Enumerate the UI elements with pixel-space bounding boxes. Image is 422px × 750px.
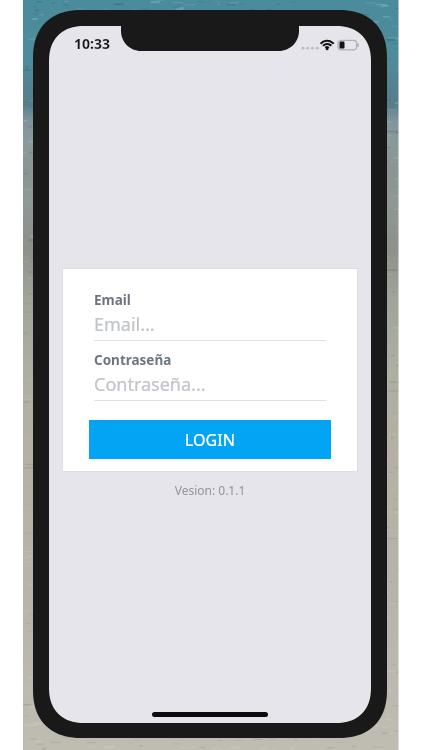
staticText: Email... (94, 312, 155, 337)
staticText: LOGIN (185, 429, 235, 451)
button[interactable]: LOGIN (89, 420, 331, 459)
staticText: Vesion: 0.1.1 (49, 482, 371, 498)
staticText: Email (94, 291, 131, 309)
staticText: 10:33 (74, 34, 110, 53)
staticText: Contraseña (94, 351, 172, 369)
staticText: Contraseña... (94, 372, 206, 397)
